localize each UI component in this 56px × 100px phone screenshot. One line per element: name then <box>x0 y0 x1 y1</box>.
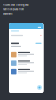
staticText: anywhere. <box>3 12 13 15</box>
staticText: Access your training and <box>3 3 28 6</box>
staticText: nutrition plans from <box>3 8 24 11</box>
